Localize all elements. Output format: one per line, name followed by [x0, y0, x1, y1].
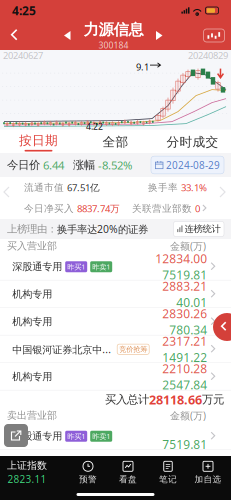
staticText: 40.01 — [176, 294, 207, 310]
button[interactable]: 分时成交 — [154, 131, 231, 153]
staticText: 涨幅 — [64, 158, 98, 172]
staticText: 2883.21 — [162, 278, 207, 294]
staticText: 上榜理由： — [7, 222, 57, 235]
button[interactable]: 深股通专用 — [0, 422, 231, 450]
staticText: 中国银河证券北京中关村大街 — [12, 342, 114, 356]
button[interactable]: Next stock — [149, 23, 169, 47]
button[interactable]: 机构专用 — [0, 280, 231, 308]
staticText: 按日期 — [19, 132, 58, 148]
staticText: 上证指数 — [7, 459, 47, 472]
button[interactable]: 连榜统计 — [173, 221, 224, 237]
staticText: 67.51亿 — [67, 181, 100, 194]
staticText: 6.44 — [43, 157, 64, 173]
staticText: 深股通专用 — [12, 260, 62, 273]
staticText: 9.1 — [136, 61, 149, 73]
staticText: 机构专用 — [12, 370, 52, 383]
staticText: 12834.00 — [155, 250, 207, 267]
button[interactable]: Chart view — [200, 22, 228, 48]
staticText: 买入营业部 — [7, 240, 57, 252]
staticText: 换手率达20%的证券 — [57, 222, 148, 236]
staticText: 2317.21 — [162, 333, 207, 349]
button[interactable]: Back — [3, 22, 27, 48]
staticText: 机构专用 — [12, 315, 52, 328]
staticText: 0 — [195, 202, 200, 215]
button[interactable]: 上证指数 — [3, 457, 51, 487]
staticText: -8.52% — [98, 157, 132, 173]
staticText: 8837.74万 — [77, 202, 120, 215]
button[interactable]: 预警 — [68, 457, 108, 487]
staticText: 昨买1 — [67, 262, 85, 272]
button[interactable]: 按日期 — [0, 131, 77, 153]
staticText: 2823.11 — [7, 472, 46, 486]
staticText: 4.22 — [86, 121, 103, 132]
staticText: 力源信息 — [83, 20, 143, 39]
staticText: 竞价抢筹 — [119, 345, 147, 354]
staticText: 今日净买入 — [24, 202, 77, 215]
staticText: 笔记 — [159, 474, 177, 485]
staticText: 昨卖1 — [92, 431, 110, 441]
button[interactable]: 2024-08-29 — [151, 156, 224, 174]
staticText: 机构专用 — [12, 288, 52, 301]
button[interactable]: 全部 — [77, 131, 154, 153]
staticText: 流通市值 — [24, 181, 67, 194]
staticText: 深股通专用 — [12, 430, 62, 443]
button[interactable]: 机构专用 — [0, 363, 231, 390]
staticText: 20240627 — [3, 49, 43, 62]
button[interactable]: 中国银河证券北京中关村大街 — [0, 335, 231, 363]
staticText: 33.1% — [181, 181, 207, 194]
staticText: 买入总计 — [105, 392, 149, 407]
staticText: 28118.66 — [149, 391, 202, 408]
staticText: 连榜统计 — [184, 223, 220, 235]
button[interactable]: Share — [4, 424, 28, 447]
staticText: 7519.81 — [162, 436, 207, 452]
button[interactable]: 今日净买入 — [0, 198, 231, 219]
staticText: 今日价 — [7, 158, 43, 172]
staticText: 1491.22 — [162, 349, 207, 365]
staticText: 万元 — [202, 392, 224, 407]
staticText: 7519.81 — [162, 267, 207, 283]
staticText: 20240829 — [188, 49, 228, 62]
staticText: 300184 — [98, 39, 128, 51]
staticText: 780.34 — [169, 322, 207, 338]
staticText: 看盘 — [119, 474, 137, 485]
button[interactable]: Previous stock — [57, 23, 77, 47]
staticText: 关联营业部数 — [132, 202, 195, 215]
staticText: 2210.28 — [162, 360, 207, 377]
button[interactable]: 深股通专用 — [0, 253, 231, 280]
button[interactable]: 加自选 — [188, 457, 228, 487]
staticText: 昨卖1 — [92, 262, 110, 272]
staticText: 换手率 — [148, 181, 181, 194]
staticText: 2830.26 — [162, 305, 207, 322]
button[interactable]: 看盘 — [108, 457, 148, 487]
staticText: 预警 — [79, 474, 97, 485]
staticText: 金额(万) — [170, 239, 206, 253]
staticText: 加自选 — [194, 474, 221, 485]
staticText: 2024-08-29 — [166, 158, 220, 172]
staticText: 昨买1 — [67, 431, 85, 441]
staticText: 金额(万) — [170, 409, 206, 422]
staticText: 卖出营业部 — [7, 409, 57, 422]
button[interactable]: 笔记 — [148, 457, 188, 487]
staticText: 分时成交 — [166, 134, 218, 150]
button[interactable]: 机构专用 — [0, 308, 231, 335]
staticText: 2547.84 — [162, 377, 207, 393]
staticText: 全部 — [102, 134, 128, 150]
staticText: 4:25 — [12, 2, 36, 19]
